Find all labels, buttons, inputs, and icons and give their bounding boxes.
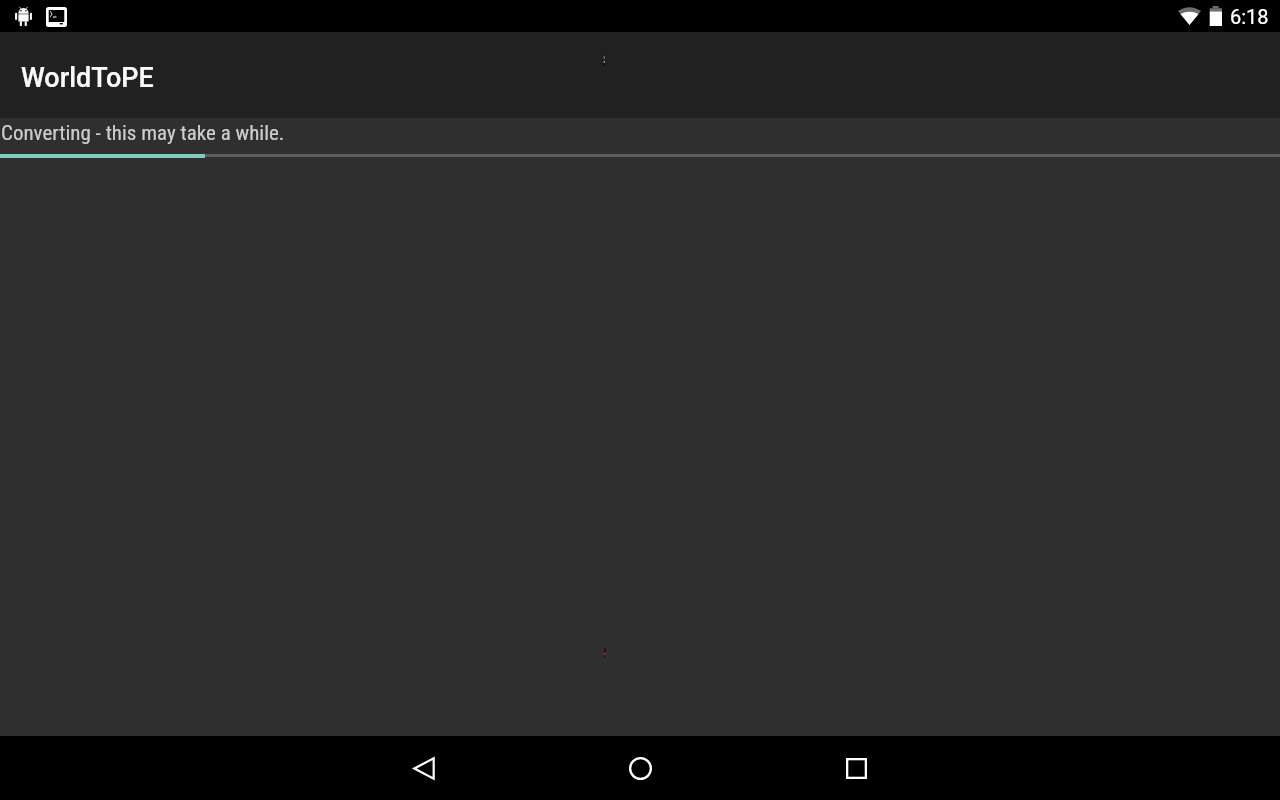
button[interactable]: Back — [316, 736, 532, 800]
button[interactable]: Recent apps — [748, 736, 964, 800]
staticText: 6:18 — [1230, 5, 1269, 28]
staticText: WorldToPE — [21, 62, 154, 94]
button[interactable]: Home — [532, 736, 748, 800]
staticText: Converting - this may take a while. — [1, 121, 285, 146]
